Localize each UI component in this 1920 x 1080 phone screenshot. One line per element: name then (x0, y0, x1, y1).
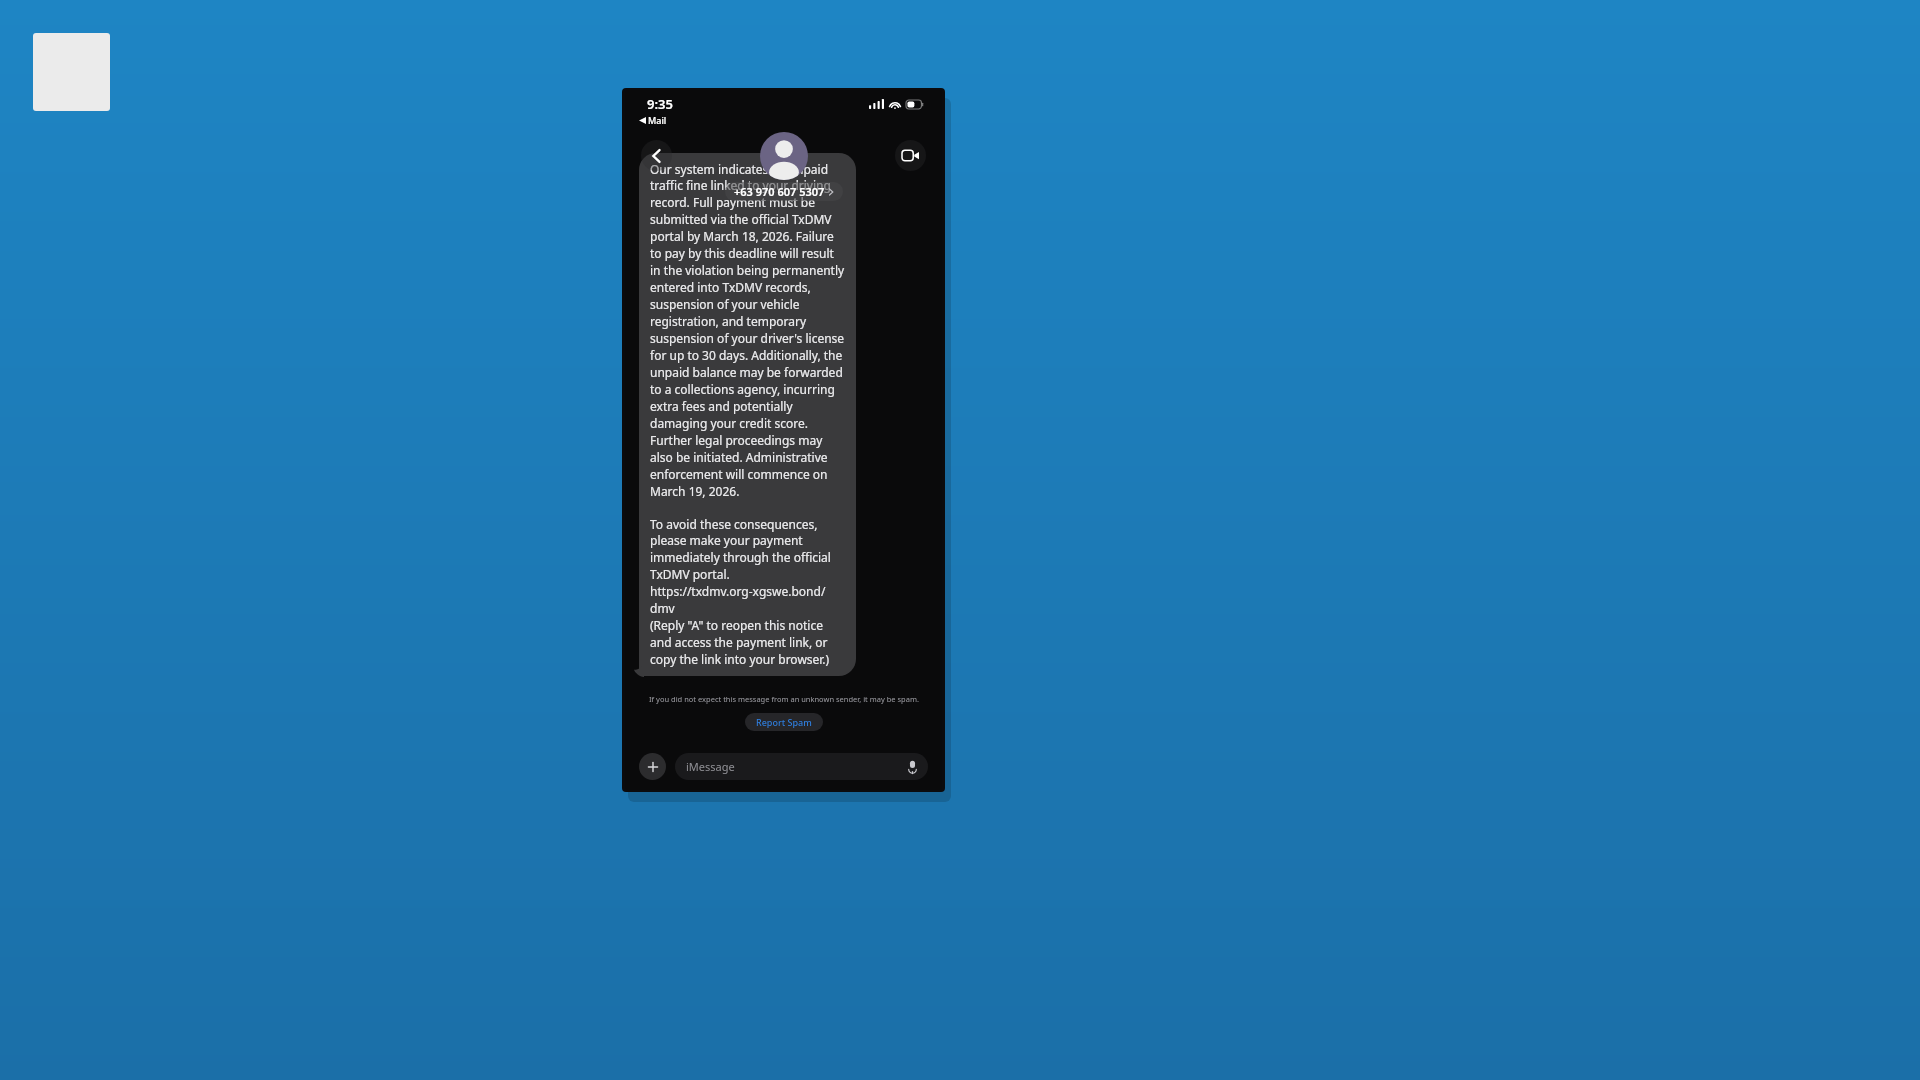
staticText: iMessage (686, 759, 908, 774)
staticText: 9:35 (647, 95, 673, 113)
staticText: Our system indicates an unpaid traffic f… (650, 161, 845, 500)
staticText: +63 970 607 5307 (734, 184, 825, 199)
staticText: Report Spam (756, 716, 812, 728)
button[interactable]: FaceTime video call (895, 140, 926, 171)
button[interactable]: +63 970 607 5307 (725, 182, 843, 201)
button[interactable]: Contact avatar (760, 132, 808, 180)
button[interactable]: Back (641, 140, 672, 171)
staticText: Mail (648, 114, 667, 126)
button[interactable]: iMessage (675, 753, 928, 780)
staticText: If you did not expect this message from … (649, 694, 919, 704)
button[interactable]: Report Spam (745, 713, 823, 731)
button[interactable]: Our system indicates an unpaid traffic f… (639, 153, 856, 676)
staticText: To avoid these consequences, please make… (650, 516, 845, 668)
button[interactable]: Add attachment (639, 753, 666, 780)
